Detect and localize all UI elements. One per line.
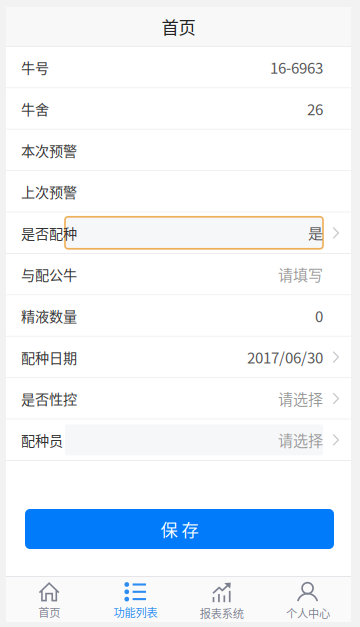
button[interactable]: 功能列表: [92, 577, 178, 622]
staticText: 请选择: [278, 387, 323, 409]
button[interactable]: 报表系统: [178, 577, 265, 622]
staticText: 个人中心: [286, 605, 330, 621]
staticText: 是否配种: [21, 223, 77, 243]
button[interactable]: 与配公牛: [6, 254, 351, 294]
staticText: 26: [307, 98, 323, 119]
button[interactable]: 是否性控: [6, 378, 351, 419]
staticText: 功能列表: [113, 604, 157, 620]
button[interactable]: 上次预警: [6, 171, 351, 212]
button[interactable]: 牛号: [6, 47, 351, 87]
staticText: 上次预警: [21, 181, 77, 202]
staticText: 配种日期: [21, 347, 77, 367]
staticText: 首页: [161, 14, 195, 39]
staticText: 16-6963: [270, 56, 323, 78]
staticText: 本次预警: [21, 140, 77, 160]
button[interactable]: 首页: [6, 577, 92, 622]
staticText: 首页: [38, 604, 60, 620]
button[interactable]: 精液数量: [6, 295, 351, 336]
staticText: 请选择: [278, 429, 323, 451]
staticText: 保 存: [160, 516, 198, 542]
staticText: 报表系统: [200, 605, 244, 621]
button[interactable]: 本次预警: [6, 130, 351, 170]
button[interactable]: 牛舍: [6, 88, 351, 129]
button[interactable]: 配种日期: [6, 337, 351, 377]
button[interactable]: 是否配种: [6, 213, 351, 253]
button[interactable]: 配种员: [6, 420, 351, 460]
staticText: 与配公牛: [21, 264, 77, 284]
staticText: 牛舍: [21, 98, 49, 119]
staticText: 0: [315, 305, 323, 326]
button[interactable]: 个人中心: [265, 577, 351, 622]
staticText: 是: [308, 222, 323, 244]
staticText: 牛号: [21, 57, 49, 77]
staticText: 2017/06/30: [247, 346, 323, 368]
staticText: 配种员: [21, 430, 63, 450]
button[interactable]: 保 存: [25, 509, 334, 549]
staticText: 请填写: [278, 263, 323, 285]
staticText: 精液数量: [21, 305, 77, 326]
staticText: 是否性控: [21, 388, 77, 409]
